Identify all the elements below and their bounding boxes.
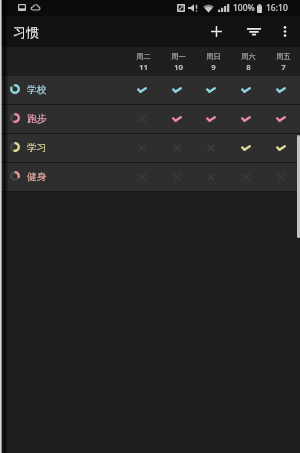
staticText: 周日 — [206, 52, 221, 61]
staticText: 7 — [281, 62, 286, 73]
staticText: 100% — [233, 2, 255, 14]
staticText: 周六 — [241, 52, 256, 61]
button[interactable]: 学校 — [0, 76, 300, 104]
staticText: 周二 — [136, 52, 151, 61]
staticText: 跑步 — [27, 113, 47, 125]
staticText: 16:10 — [266, 2, 288, 14]
staticText: 周一 — [171, 52, 186, 61]
button[interactable]: Completed — [267, 134, 295, 162]
staticText: 周五 — [276, 52, 291, 61]
button[interactable]: Completed — [267, 76, 295, 104]
button[interactable]: Completed — [163, 76, 191, 104]
button[interactable]: Completed — [197, 105, 225, 133]
staticText: 学校 — [27, 84, 47, 96]
button[interactable]: 跑步 — [0, 105, 300, 133]
button[interactable]: More options — [272, 16, 297, 47]
staticText: 习惯 — [13, 24, 39, 40]
button[interactable]: Completed — [267, 105, 295, 133]
button[interactable]: Completed — [232, 105, 260, 133]
button[interactable]: Completed — [232, 134, 260, 162]
button[interactable]: 健身 — [0, 163, 300, 191]
staticText: 健身 — [27, 171, 47, 183]
staticText: 8 — [246, 62, 251, 73]
button[interactable]: 学习 — [0, 134, 300, 162]
button[interactable]: Filter — [241, 16, 266, 47]
button[interactable]: Completed — [163, 105, 191, 133]
button[interactable]: Completed — [128, 76, 156, 104]
staticText: 11 — [139, 62, 148, 73]
staticText: 9 — [211, 62, 216, 73]
button[interactable]: Completed — [197, 76, 225, 104]
button[interactable]: Add habit — [204, 16, 229, 47]
staticText: 学习 — [27, 142, 47, 154]
staticText: 10 — [174, 62, 183, 73]
button[interactable]: Completed — [232, 76, 260, 104]
